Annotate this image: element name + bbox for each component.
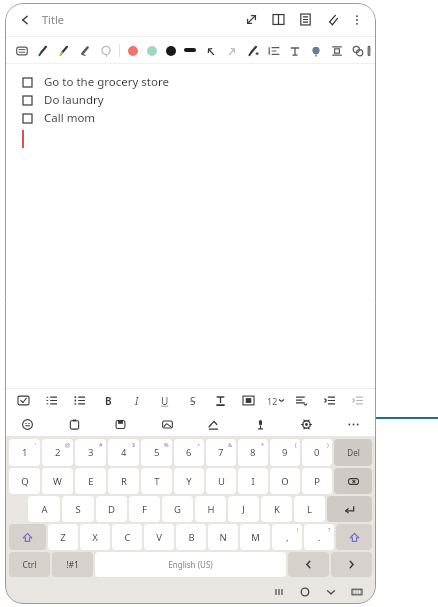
button[interactable]: Outdent [347,390,368,411]
button[interactable]: Go to the grocery store [5,73,376,91]
button[interactable]: R [108,468,139,494]
button[interactable]: Eraser [74,40,95,61]
button[interactable]: . [304,524,334,550]
button[interactable]: 7 [206,439,236,466]
button[interactable]: I [238,468,268,494]
button[interactable]: U [154,390,175,411]
button[interactable]: Settings [296,414,317,435]
button[interactable]: Handwriting [203,414,224,435]
button[interactable]: Alignment [291,390,312,411]
button[interactable]: Insert [326,40,347,61]
button[interactable]: Pen [32,40,53,61]
button[interactable]: List view [295,9,316,30]
button[interactable]: Y [174,468,204,494]
button[interactable]: Lasso [95,40,116,61]
button[interactable]: D [96,496,127,522]
button[interactable]: More options [347,10,367,30]
button[interactable]: Shapes [347,40,368,61]
button[interactable]: H [195,496,226,522]
button[interactable]: Home [292,580,318,604]
button[interactable]: Numbered list [41,390,62,411]
button[interactable]: Image [157,414,178,435]
button[interactable]: L [294,496,325,522]
button[interactable]: 12 [267,390,284,411]
button[interactable]: Next [331,552,372,577]
button[interactable]: Recents [266,580,292,604]
button[interactable]: A [28,496,60,522]
button[interactable]: !#1 [52,552,93,577]
button[interactable]: Emoji [17,414,38,435]
button[interactable]: 6 [174,439,204,466]
button[interactable]: Text convert [284,40,305,61]
button[interactable]: Z [48,524,78,550]
button[interactable]: Undo [200,40,221,61]
button[interactable]: B [98,390,119,411]
button[interactable]: S [182,390,203,411]
button[interactable]: 1 [9,439,40,466]
button[interactable]: 8 [238,439,268,466]
button[interactable]: 4 [108,439,139,466]
button[interactable]: Pages view [268,9,289,30]
button[interactable]: O [270,468,300,494]
button[interactable]: Black [161,41,180,60]
button[interactable]: Highlight [238,390,259,411]
button[interactable]: Sticker [110,414,131,435]
button[interactable]: S [62,496,94,522]
button[interactable]: K [261,496,292,522]
button[interactable]: Backspace [334,468,372,494]
button[interactable]: Del [334,439,372,466]
button[interactable]: Redo [221,40,242,61]
button[interactable]: C [112,524,142,550]
button[interactable]: X [80,524,110,550]
button[interactable]: Keyboard layout [344,580,370,604]
button[interactable]: Clipboard [64,414,85,435]
button[interactable]: U [206,468,236,494]
button[interactable]: Highlighter [53,40,74,61]
button[interactable]: Text color [210,390,231,411]
button[interactable]: B [176,524,206,550]
button[interactable]: Stroke width [180,40,200,60]
button[interactable]: Pen settings [242,40,263,61]
button[interactable]: Align [263,40,284,61]
button[interactable]: Previous [288,552,329,577]
button[interactable]: Voice input [250,414,271,435]
button[interactable]: English (US) [95,552,286,577]
button[interactable]: Lock [368,40,370,61]
button[interactable]: Green [142,41,161,60]
button[interactable]: 3 [75,439,106,466]
button[interactable]: Shape [305,40,326,61]
button[interactable]: G [162,496,193,522]
button[interactable]: I [126,390,147,411]
button[interactable]: 5 [141,439,172,466]
button[interactable]: M [240,524,270,550]
button[interactable]: More [343,414,364,435]
button[interactable]: Shift [9,524,46,550]
button[interactable]: P [302,468,332,494]
button[interactable]: Shift [336,524,372,550]
button[interactable]: Text mode [11,40,32,61]
button[interactable]: Do laundry [5,91,376,109]
button[interactable]: Bulleted list [69,390,90,411]
button[interactable]: E [75,468,106,494]
button[interactable]: T [141,468,172,494]
button[interactable]: V [144,524,174,550]
button[interactable]: Expand [241,9,262,30]
button[interactable]: J [228,496,259,522]
button[interactable]: W [42,468,73,494]
button[interactable]: Attach [322,9,343,30]
button[interactable]: Red [123,41,142,60]
button[interactable]: Ctrl [9,552,50,577]
button[interactable]: Back [14,9,36,31]
button[interactable]: Indent [319,390,340,411]
button[interactable]: Hide keyboard [318,580,344,604]
button[interactable]: 0 [302,439,332,466]
button[interactable]: N [208,524,238,550]
button[interactable]: 9 [270,439,300,466]
button[interactable]: 2 [42,439,73,466]
button[interactable]: Q [9,468,40,494]
button[interactable]: Call mom [5,109,376,127]
button[interactable]: Checklist [13,390,34,411]
button[interactable]: F [129,496,160,522]
button[interactable]: Enter [327,496,372,522]
button[interactable]: , [272,524,302,550]
